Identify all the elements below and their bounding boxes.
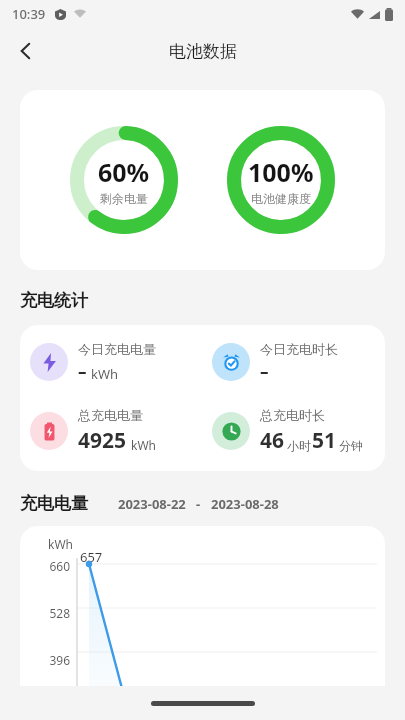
- staticText: -: [196, 495, 201, 513]
- staticText: kWh: [131, 437, 156, 453]
- button[interactable]: 今日充电电量: [20, 341, 202, 383]
- staticText: 分钟: [339, 438, 363, 453]
- staticText: –: [260, 360, 269, 383]
- staticText: 电池健康度: [251, 191, 311, 206]
- button[interactable]: 总充电电量: [20, 407, 202, 455]
- staticText: 100%: [248, 155, 314, 189]
- staticText: 528: [49, 605, 70, 621]
- staticText: 396: [49, 652, 70, 668]
- staticText: 10:39: [12, 5, 46, 23]
- staticText: 657: [80, 548, 103, 566]
- staticText: 小时: [287, 438, 311, 453]
- staticText: 2023-08-22: [118, 495, 186, 513]
- button[interactable]: Back: [6, 31, 46, 71]
- staticText: 46: [260, 426, 285, 455]
- staticText: 660: [49, 558, 70, 574]
- staticText: 2023-08-28: [211, 495, 279, 513]
- staticText: kWh: [48, 536, 73, 552]
- staticText: 4925: [78, 426, 127, 455]
- staticText: 今日充电电量: [78, 341, 156, 357]
- staticText: 充电统计: [20, 290, 88, 311]
- button[interactable]: 总充电时长: [202, 407, 385, 455]
- button[interactable]: 2023-08-22: [118, 495, 279, 513]
- staticText: 剩余电量: [100, 191, 148, 206]
- staticText: 充电电量: [20, 493, 88, 514]
- staticText: 今日充电时长: [260, 341, 338, 357]
- staticText: 总充电时长: [260, 407, 325, 423]
- staticText: 60%: [98, 155, 150, 189]
- staticText: 总充电电量: [78, 407, 143, 423]
- button[interactable]: 今日充电时长: [202, 341, 385, 383]
- staticText: 电池数据: [169, 41, 237, 62]
- staticText: –: [78, 360, 87, 383]
- staticText: 51: [312, 426, 337, 455]
- staticText: kWh: [91, 365, 119, 383]
